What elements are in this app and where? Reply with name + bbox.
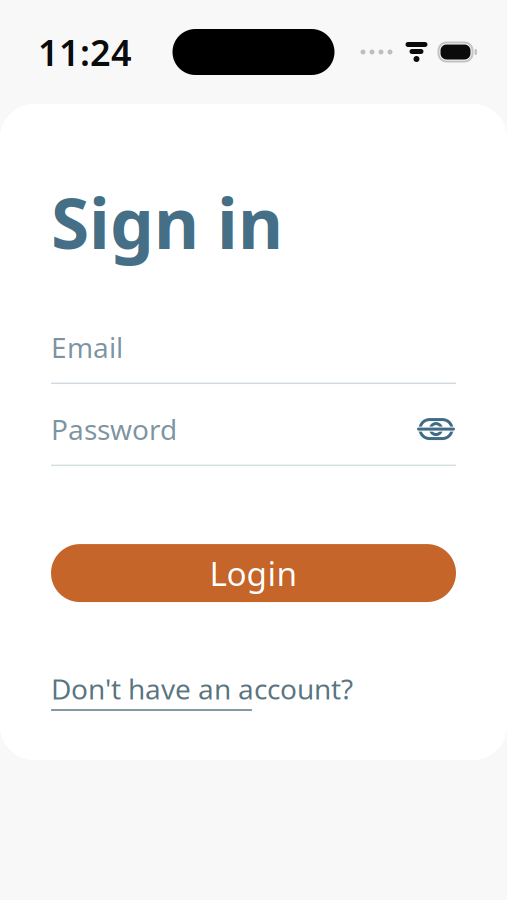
staticText: 11:24 (38, 28, 132, 76)
button[interactable]: Show password (416, 412, 456, 446)
staticText: Don't have an account? (51, 670, 353, 707)
button[interactable]: Login (51, 544, 456, 602)
staticText: Sign in (51, 176, 283, 268)
staticText: Login (209, 551, 297, 595)
staticText: Password (51, 410, 177, 448)
button[interactable]: Don't have an account? (51, 670, 353, 711)
staticText: Email (51, 328, 123, 366)
